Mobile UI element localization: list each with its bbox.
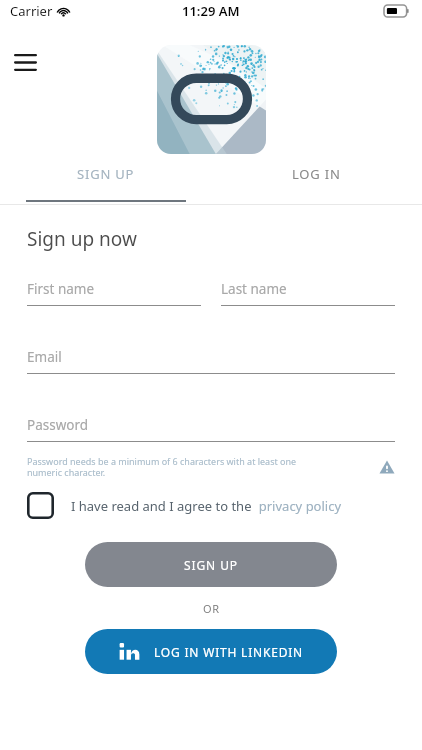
button[interactable]: First name <box>27 280 201 306</box>
staticText: Password needs be a minimum of 6 charact… <box>27 455 371 479</box>
staticText: LOG IN <box>292 165 341 183</box>
button[interactable]: LOG IN <box>211 155 422 193</box>
button[interactable]: Last name <box>221 280 395 306</box>
staticText: First name <box>27 280 95 298</box>
button[interactable]: SIGN UP <box>85 542 337 587</box>
button[interactable]: LOG IN WITH LINKEDIN <box>85 629 337 674</box>
staticText: 11:29 AM <box>182 2 240 20</box>
button[interactable]: privacy policy <box>252 497 342 515</box>
staticText: Password <box>27 416 89 434</box>
staticText: SIGN UP <box>77 165 135 183</box>
button[interactable]: I have read and I agree to the <box>27 492 395 519</box>
button[interactable]: Email <box>27 348 395 374</box>
staticText: I have read and I agree to the <box>71 497 252 515</box>
staticText: OR <box>203 601 220 616</box>
staticText: Carrier <box>10 2 53 20</box>
staticText: Sign up now <box>27 226 137 252</box>
staticText: Email <box>27 348 62 366</box>
staticText: LOG IN WITH LINKEDIN <box>154 644 304 660</box>
other: Warning <box>379 459 395 475</box>
staticText: Last name <box>221 280 287 298</box>
button[interactable]: Password <box>27 416 395 442</box>
staticText: privacy policy <box>252 497 342 515</box>
staticText: SIGN UP <box>184 557 238 573</box>
button[interactable]: SIGN UP <box>0 155 211 193</box>
button[interactable]: Menu <box>6 43 44 81</box>
